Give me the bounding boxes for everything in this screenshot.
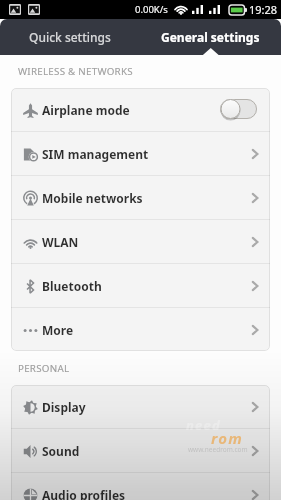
button[interactable]: Sound	[11, 429, 270, 472]
staticText: PERSONAL	[18, 362, 70, 375]
staticText: Display	[42, 399, 86, 415]
button[interactable]: Quick settings	[0, 19, 140, 55]
staticText: General settings	[161, 29, 260, 45]
button[interactable]: Bluetooth	[11, 264, 270, 307]
staticText: Mobile networks	[42, 190, 143, 206]
button[interactable]: Airplane mode	[220, 99, 257, 121]
button[interactable]: WLAN	[11, 220, 270, 263]
staticText: 0.00K/s	[135, 3, 168, 16]
staticText: Audio profiles	[42, 487, 126, 500]
staticText: Sound	[42, 443, 80, 459]
button[interactable]: Airplane mode	[11, 88, 270, 131]
staticText: WLAN	[42, 234, 79, 250]
staticText: SIM management	[42, 146, 149, 162]
button[interactable]: Display	[11, 385, 270, 428]
button[interactable]: Mobile networks	[11, 176, 270, 219]
staticText: 19:28	[249, 2, 278, 17]
button[interactable]: General settings	[140, 19, 281, 55]
staticText: More	[42, 322, 74, 338]
staticText: WIRELESS & NETWORKS	[18, 65, 133, 78]
staticText: rom	[211, 428, 243, 448]
staticText: Airplane mode	[42, 102, 130, 118]
button[interactable]: SIM management	[11, 132, 270, 175]
button[interactable]: More	[11, 308, 270, 351]
staticText: need	[186, 416, 221, 434]
button[interactable]: Audio profiles	[11, 473, 270, 500]
staticText: Quick settings	[29, 29, 111, 45]
staticText: Bluetooth	[42, 278, 102, 294]
staticText: www.needrom.com	[188, 445, 248, 454]
